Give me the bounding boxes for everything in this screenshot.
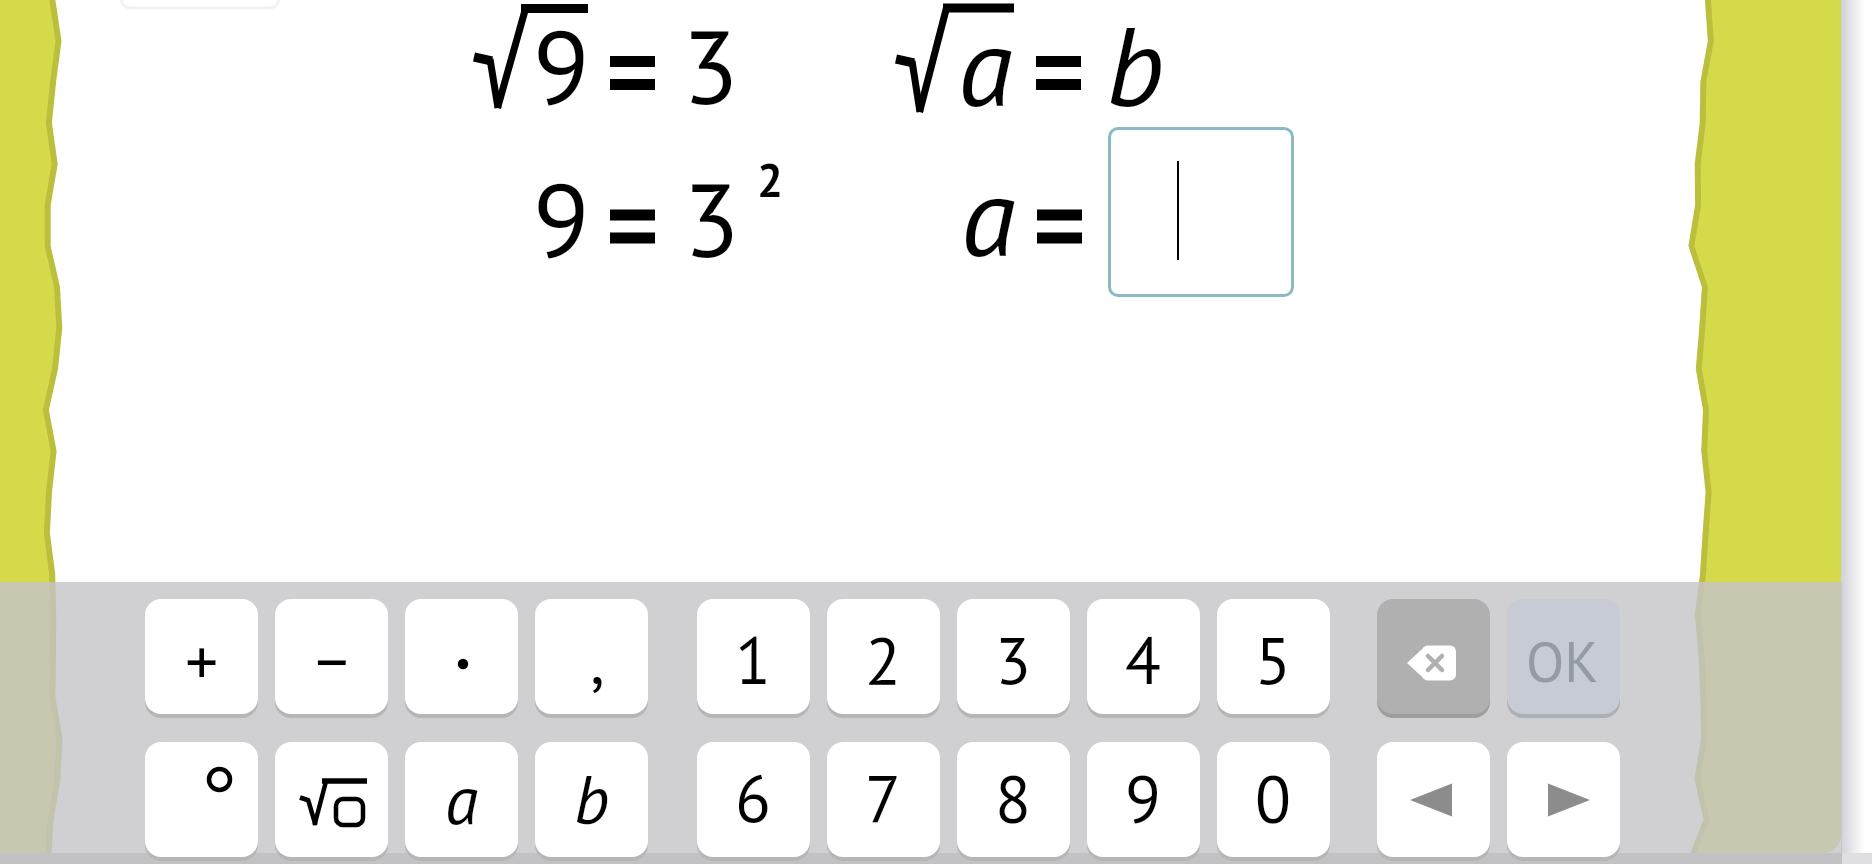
- staticText: 9: [533, 0, 590, 133]
- staticText: ,: [590, 616, 605, 701]
- button[interactable]: [145, 599, 258, 714]
- button[interactable]: [697, 742, 810, 857]
- button[interactable]: [405, 599, 518, 714]
- button[interactable]: [1087, 599, 1200, 714]
- staticText: b: [574, 755, 610, 843]
- staticText: 2: [865, 617, 901, 702]
- staticText: 3: [682, 0, 739, 133]
- staticText: 7: [865, 755, 901, 840]
- staticText: 6: [735, 755, 771, 840]
- staticText: a: [445, 755, 479, 843]
- staticText: 2: [757, 150, 784, 210]
- button[interactable]: [275, 599, 388, 714]
- button[interactable]: [1377, 599, 1490, 714]
- button[interactable]: [1507, 599, 1620, 714]
- staticText: 3: [995, 617, 1031, 702]
- staticText: 1: [735, 617, 771, 702]
- staticText: −: [315, 618, 349, 703]
- staticText: 8: [995, 755, 1031, 840]
- button[interactable]: [827, 599, 940, 714]
- button[interactable]: [1108, 127, 1294, 297]
- button[interactable]: [275, 742, 388, 857]
- staticText: 9: [1125, 755, 1161, 840]
- button[interactable]: [1217, 599, 1330, 714]
- button[interactable]: [145, 742, 258, 857]
- button[interactable]: [1217, 742, 1330, 857]
- button[interactable]: [957, 742, 1070, 857]
- staticText: +: [185, 618, 219, 703]
- button[interactable]: [1507, 742, 1620, 857]
- staticText: 4: [1125, 617, 1161, 702]
- button[interactable]: [827, 742, 940, 857]
- staticText: 3: [683, 151, 740, 286]
- staticText: 5: [1255, 617, 1291, 702]
- button[interactable]: [1087, 742, 1200, 857]
- button[interactable]: [535, 599, 648, 714]
- button[interactable]: [405, 742, 518, 857]
- button[interactable]: [957, 599, 1070, 714]
- staticText: a: [961, 142, 1016, 287]
- button[interactable]: [535, 742, 648, 857]
- button[interactable]: [697, 599, 810, 714]
- button[interactable]: [1377, 742, 1490, 857]
- staticText: a: [958, 0, 1013, 137]
- staticText: 0: [1255, 755, 1291, 840]
- staticText: b: [1106, 0, 1165, 137]
- staticText: OK: [1526, 625, 1599, 697]
- staticText: 9: [533, 151, 590, 286]
